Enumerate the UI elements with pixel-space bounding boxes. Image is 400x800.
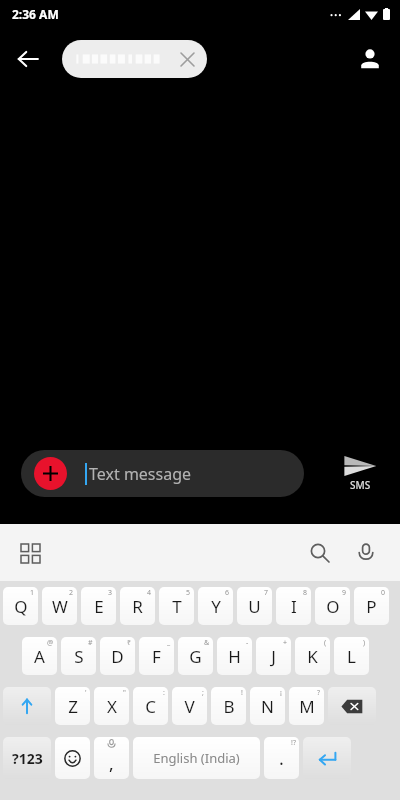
button[interactable]: - (217, 637, 252, 675)
button[interactable]: Send SMS (332, 455, 388, 492)
staticText: @ (47, 638, 54, 648)
staticText: G (189, 645, 202, 668)
staticText: ! (241, 688, 243, 698)
staticText: V (184, 695, 195, 718)
staticText: , (109, 752, 114, 775)
button[interactable]: ? (289, 687, 324, 725)
staticText: C (145, 695, 156, 718)
button[interactable]: Add contact (350, 39, 390, 79)
button[interactable]: Remove recipient (62, 40, 207, 78)
button[interactable]: + (256, 637, 291, 675)
staticText: T (172, 595, 182, 618)
staticText: K (307, 645, 318, 668)
staticText: B (223, 695, 235, 718)
button[interactable]: 3 (81, 587, 116, 625)
staticText: Z (68, 695, 78, 718)
button[interactable]: & (178, 637, 213, 675)
staticText: L (347, 645, 356, 668)
button[interactable]: !? (264, 737, 299, 779)
staticText: I (291, 595, 297, 618)
button[interactable]: 8 (276, 587, 311, 625)
staticText: ? (317, 688, 321, 698)
button[interactable]: 1 (3, 587, 38, 625)
staticText: & (204, 638, 210, 648)
staticText: 1 (30, 588, 35, 598)
staticText: SMS (350, 478, 371, 492)
button[interactable]: Keyboard modes (10, 533, 50, 573)
staticText: ¡ (280, 688, 282, 698)
button[interactable]: _ (139, 637, 174, 675)
staticText: English (India) (153, 749, 240, 767)
button[interactable]: ( (295, 637, 330, 675)
staticText: " (123, 688, 126, 698)
button[interactable]: English (India) (133, 737, 260, 779)
staticText: ) (363, 638, 366, 648)
staticText: O (326, 595, 340, 618)
button[interactable]: 6 (198, 587, 233, 625)
staticText: !? (291, 738, 296, 748)
staticText: + (283, 638, 288, 648)
staticText: D (111, 645, 124, 668)
staticText: ( (324, 638, 327, 648)
staticText: E (94, 595, 104, 618)
button[interactable]: 7 (237, 587, 272, 625)
staticText: 2 (69, 588, 74, 598)
button[interactable]: ; (172, 687, 207, 725)
button[interactable]: , (94, 737, 129, 779)
button[interactable]: Back (8, 39, 48, 79)
staticText: 0 (381, 588, 386, 598)
button[interactable]: Attach (34, 457, 67, 490)
staticText: ; (202, 688, 204, 698)
button[interactable]: ! (211, 687, 246, 725)
button[interactable]: 5 (159, 587, 194, 625)
button[interactable]: Enter (303, 737, 351, 779)
staticText: # (88, 638, 93, 648)
button[interactable]: 9 (315, 587, 350, 625)
button[interactable]: ) (334, 637, 369, 675)
staticText: J (271, 645, 276, 668)
staticText: . (279, 746, 284, 771)
staticText: P (366, 595, 377, 618)
button[interactable]: Voice input (346, 533, 386, 573)
staticText: A (34, 645, 45, 668)
button[interactable]: Backspace (328, 687, 376, 725)
button[interactable]: Remove recipient (172, 44, 202, 74)
staticText: 9 (342, 588, 347, 598)
staticText: X (107, 695, 117, 718)
staticText: F (152, 645, 161, 668)
staticText: R (132, 595, 143, 618)
button[interactable]: Search (300, 533, 340, 573)
staticText: S (74, 645, 84, 668)
button[interactable]: Emoji (55, 737, 90, 779)
staticText: - (246, 638, 249, 648)
button[interactable]: Attach (21, 450, 304, 497)
staticText: W (52, 595, 68, 618)
staticText: Y (211, 595, 221, 618)
staticText: ?123 (12, 749, 43, 768)
staticText: 8 (303, 588, 308, 598)
button[interactable]: " (94, 687, 129, 725)
button[interactable]: ₹ (100, 637, 135, 675)
button[interactable]: ' (55, 687, 90, 725)
staticText: 5 (186, 588, 191, 598)
button[interactable]: 4 (120, 587, 155, 625)
button[interactable]: ¡ (250, 687, 285, 725)
button[interactable]: ?123 (3, 737, 51, 779)
staticText: 2:36 AM (12, 6, 59, 22)
staticText: Text message (89, 463, 192, 485)
button[interactable]: 0 (354, 587, 389, 625)
staticText: M (299, 695, 315, 718)
button[interactable]: @ (22, 637, 57, 675)
staticText: ' (85, 688, 87, 698)
button[interactable]: 2 (42, 587, 77, 625)
staticText: U (248, 595, 261, 618)
staticText: N (261, 695, 274, 718)
button[interactable]: : (133, 687, 168, 725)
staticText: 6 (225, 588, 230, 598)
button[interactable]: # (61, 637, 96, 675)
staticText: H (228, 645, 241, 668)
staticText: 3 (108, 588, 113, 598)
staticText: : (163, 688, 165, 698)
staticText: 4 (147, 588, 152, 598)
button[interactable]: Shift (3, 687, 51, 725)
